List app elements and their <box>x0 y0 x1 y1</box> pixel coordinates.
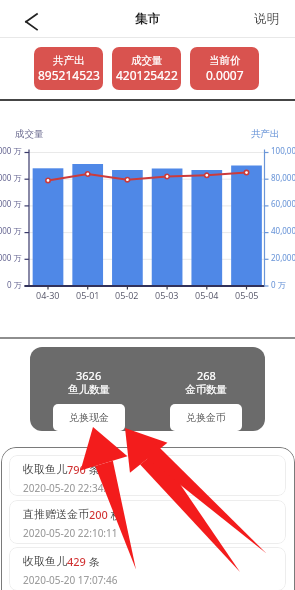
staticText: 04-30 <box>36 289 60 301</box>
staticText: 枚 <box>108 507 122 522</box>
staticText: 20,000 <box>271 252 295 263</box>
button[interactable]: 当前价 <box>190 47 259 90</box>
staticText: 895214523 <box>38 67 100 83</box>
staticText: 2,000 万 <box>0 252 22 263</box>
staticText: 兑换现金 <box>69 411 109 424</box>
staticText: 0 万 <box>7 279 22 290</box>
button[interactable]: 成交量 <box>112 47 181 90</box>
staticText: 0 万 <box>271 279 286 290</box>
staticText: 3626 <box>76 368 102 383</box>
button[interactable]: 收取鱼儿 <box>9 547 286 590</box>
staticText: 05-01 <box>76 289 100 301</box>
staticText: 共产出 <box>251 128 280 140</box>
staticText: 80,000 <box>271 172 295 183</box>
staticText: 4,000 万 <box>0 225 22 236</box>
staticText: 8,000 万 <box>0 172 22 183</box>
staticText: 40,000 <box>271 225 295 236</box>
staticText: 2020-05-20 22:10:11 <box>23 526 118 540</box>
staticText: 收取鱼儿 <box>23 462 67 476</box>
staticText: 成交量 <box>131 54 163 67</box>
staticText: 200 <box>89 507 108 522</box>
button[interactable]: 直推赠送金币 <box>9 500 286 544</box>
staticText: 直推赠送金币 <box>23 507 89 521</box>
staticText: 05-04 <box>195 289 219 301</box>
button[interactable]: 兑换现金 <box>53 404 125 431</box>
staticText: 集市 <box>135 11 160 27</box>
staticText: 420125422 <box>116 67 178 83</box>
staticText: 05-05 <box>235 289 259 301</box>
button[interactable]: 收取鱼儿 <box>9 455 286 496</box>
staticText: 05-02 <box>115 289 139 301</box>
staticText: 268 <box>197 368 216 383</box>
staticText: 2020-05-20 17:07:46 <box>23 573 118 587</box>
staticText: 说明 <box>254 11 279 27</box>
button[interactable] <box>18 8 46 36</box>
staticText: 100,000 <box>271 145 295 156</box>
button[interactable]: 说明 <box>254 11 279 27</box>
staticText: 429 <box>67 554 86 569</box>
staticText: 条 <box>86 554 100 569</box>
staticText: 790 <box>67 462 86 477</box>
staticText: 鱼儿数量 <box>68 383 110 396</box>
staticText: 兑换金币 <box>186 411 226 424</box>
button[interactable]: 共产出 <box>34 47 103 90</box>
staticText: 当前价 <box>209 54 241 67</box>
staticText: 共产出 <box>53 54 85 67</box>
staticText: 收取鱼儿 <box>23 554 67 568</box>
staticText: 05-03 <box>155 289 179 301</box>
button[interactable]: 兑换金币 <box>170 404 242 431</box>
staticText: 条 <box>86 462 100 477</box>
staticText: 2020-05-20 22:34:16 <box>23 481 118 495</box>
staticText: 6,000 万 <box>0 198 22 209</box>
staticText: 60,000 <box>271 198 295 209</box>
staticText: 0,000 万 <box>0 145 22 156</box>
staticText: 金币数量 <box>185 383 227 396</box>
staticText: 成交量 <box>15 128 44 140</box>
staticText: 0.0007 <box>206 67 244 83</box>
